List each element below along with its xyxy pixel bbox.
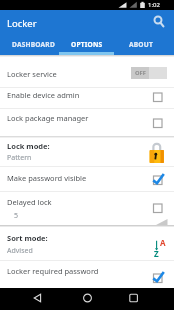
button[interactable]: ABOUT: [114, 36, 168, 55]
staticText: DASHBOARD: [12, 40, 55, 49]
staticText: 1:02: [148, 1, 160, 9]
staticText: Advised: [7, 246, 33, 256]
staticText: Locker service: [7, 69, 57, 79]
button[interactable]: DASHBOARD: [6, 36, 60, 55]
staticText: Pattern: [7, 153, 32, 163]
button[interactable]: Make password visible: [0, 166, 174, 191]
staticText: OPTIONS: [71, 40, 103, 49]
staticText: Z: [154, 248, 159, 259]
staticText: Enable device admin: [7, 90, 80, 100]
staticText: Make password visible: [7, 173, 87, 183]
button[interactable]: [68, 288, 106, 310]
staticText: Lock mode:: [7, 141, 50, 151]
button[interactable]: Lock mode:: [0, 136, 174, 165]
button[interactable]: Enable device admin: [0, 87, 174, 108]
button[interactable]: Locker required password: [0, 261, 174, 288]
button[interactable]: Delayed lock: [0, 192, 174, 225]
button[interactable]: [150, 14, 168, 32]
button[interactable]: OPTIONS: [60, 36, 114, 55]
staticText: Lock package manager: [7, 113, 89, 123]
button[interactable]: [20, 288, 58, 310]
staticText: ABOUT: [129, 40, 153, 49]
button[interactable]: Sort mode:: [0, 227, 174, 260]
staticText: 5: [14, 211, 19, 221]
staticText: Locker required password: [7, 266, 99, 276]
button[interactable]: Lock package manager: [0, 108, 174, 134]
staticText: Delayed lock: [7, 197, 52, 207]
button[interactable]: OFF: [131, 67, 167, 79]
staticText: Sort mode:: [7, 233, 48, 243]
staticText: A: [160, 237, 166, 248]
button[interactable]: [114, 288, 152, 310]
staticText: OFF: [135, 69, 146, 77]
staticText: Locker: [7, 17, 37, 30]
button[interactable]: Locker service: [0, 57, 174, 87]
